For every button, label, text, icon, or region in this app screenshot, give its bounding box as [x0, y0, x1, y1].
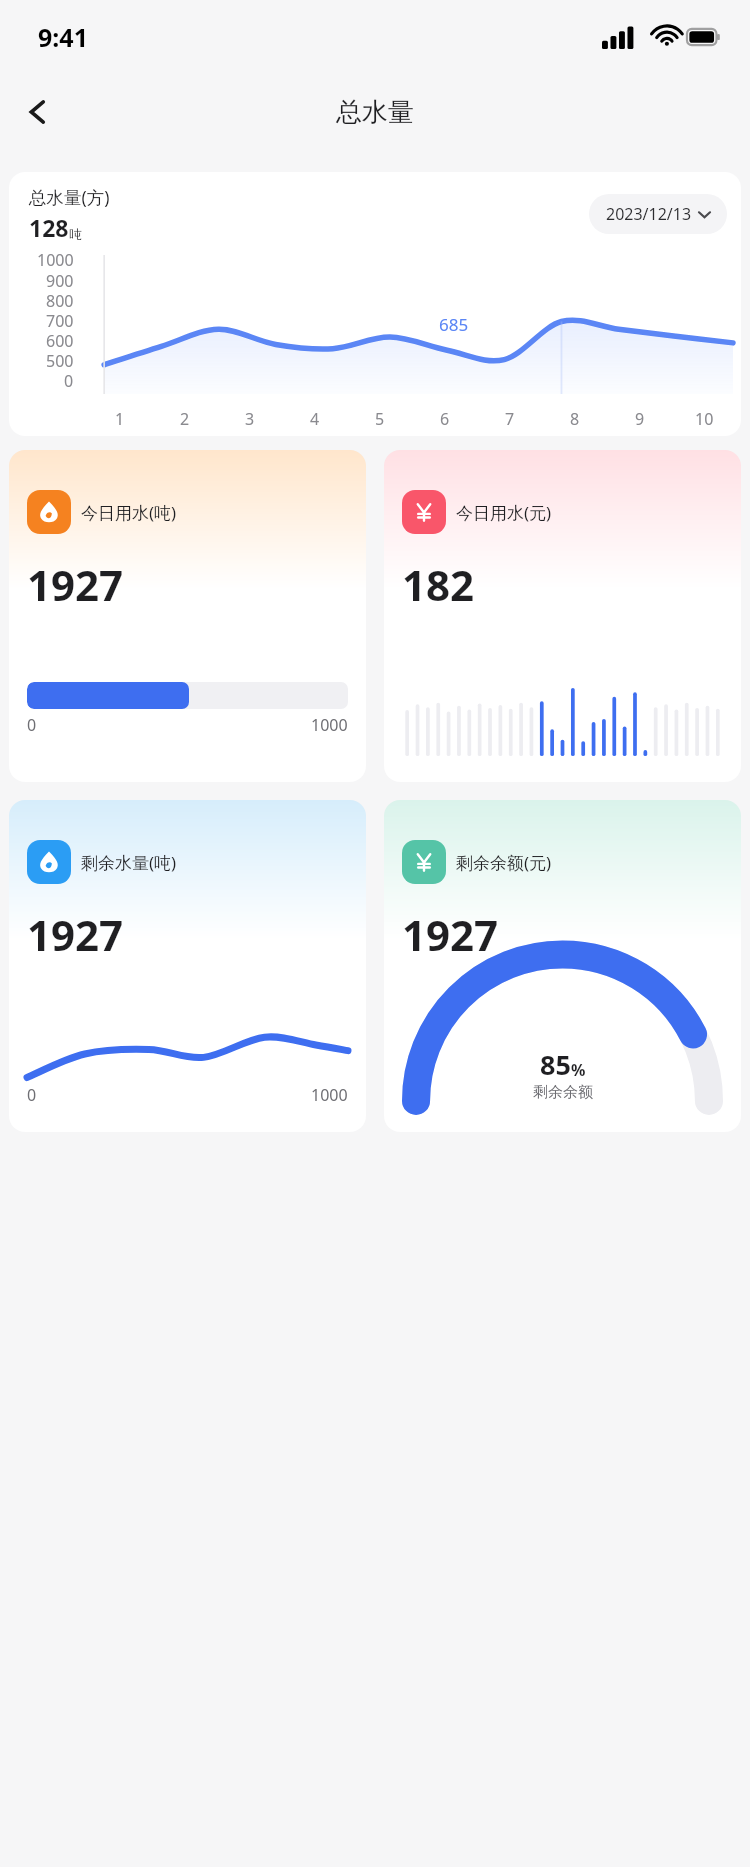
staticText: 600	[46, 330, 74, 350]
staticText: 2	[180, 408, 190, 430]
staticText: 700	[46, 310, 74, 330]
staticText: 8	[570, 408, 580, 430]
staticText: 900	[46, 270, 74, 290]
button[interactable]: 剩余水量(吨)	[9, 800, 366, 1132]
staticText: 今日用水(吨)	[81, 501, 177, 524]
button[interactable]: 2023/12/13	[589, 194, 727, 234]
staticText: 1927	[27, 556, 124, 613]
staticText: 500	[46, 350, 74, 370]
staticText: 今日用水(元)	[456, 501, 552, 524]
staticText: 3	[245, 408, 255, 430]
button[interactable]: 剩余余额(元)	[384, 800, 741, 1132]
button[interactable]: Back	[10, 84, 66, 140]
staticText: 128	[29, 212, 69, 243]
staticText: 7	[505, 408, 515, 430]
staticText: 6	[440, 408, 450, 430]
button[interactable]: 今日用水(元)	[384, 450, 741, 782]
staticText: 800	[46, 290, 74, 310]
staticText: 1927	[402, 906, 499, 963]
staticText: 9:41	[38, 20, 88, 54]
staticText: 1000	[37, 249, 74, 270]
staticText: 剩余水量(吨)	[81, 851, 177, 874]
staticText: 4	[310, 408, 320, 430]
staticText: 1000	[311, 1084, 348, 1106]
staticText: 1927	[27, 906, 124, 963]
staticText: 0	[27, 1084, 37, 1106]
staticText: 182	[402, 556, 475, 613]
staticText: 5	[375, 408, 385, 430]
button[interactable]: 今日用水(吨)	[9, 450, 366, 782]
staticText: 吨	[69, 226, 82, 242]
staticText: 685	[439, 313, 469, 336]
staticText: %	[571, 1059, 586, 1081]
staticText: 1	[115, 408, 125, 430]
staticText: 总水量	[336, 96, 414, 129]
staticText: 总水量(方)	[29, 185, 110, 209]
staticText: 1000	[311, 714, 348, 736]
staticText: 剩余余额	[533, 1083, 593, 1102]
staticText: 2023/12/13	[606, 203, 692, 225]
staticText: 0	[27, 714, 37, 736]
staticText: 9	[635, 408, 645, 430]
staticText: 85	[540, 1046, 571, 1083]
staticText: 剩余余额(元)	[456, 851, 552, 874]
staticText: 0	[64, 370, 74, 392]
button[interactable]: 总水量(方)	[9, 172, 741, 436]
staticText: 10	[695, 408, 714, 430]
